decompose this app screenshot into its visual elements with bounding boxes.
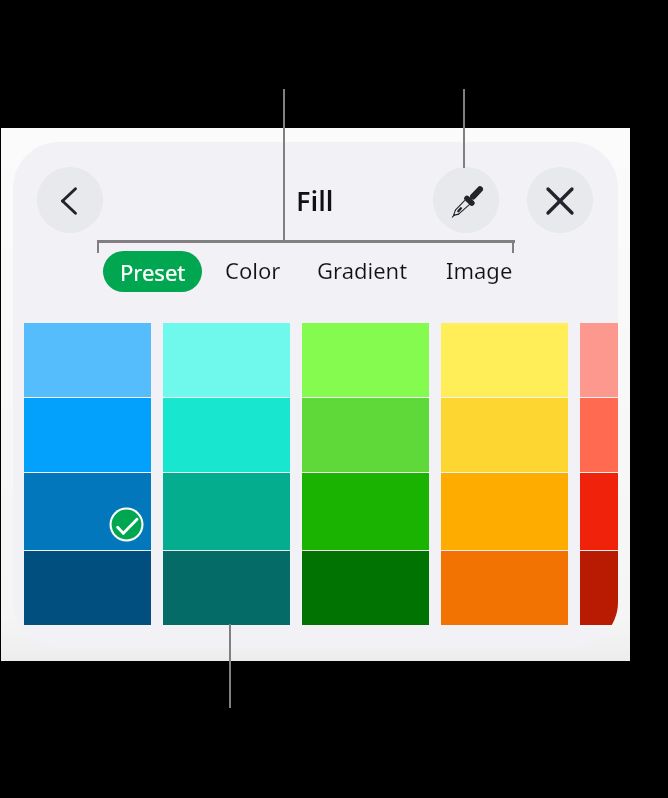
button[interactable]: Preset [103, 251, 202, 292]
staticText: Preset [120, 257, 186, 287]
button[interactable]: Eyedropper [433, 167, 499, 233]
staticText: Gradient [317, 255, 408, 285]
button[interactable] [580, 551, 618, 625]
button[interactable]: Selected colour [109, 507, 144, 542]
button[interactable]: Close [527, 167, 593, 233]
staticText: Image [446, 255, 513, 285]
button[interactable]: Back [37, 167, 103, 233]
button[interactable] [24, 473, 151, 550]
staticText: Color [225, 255, 281, 285]
button[interactable]: Image [439, 249, 519, 290]
staticText: Fill [296, 182, 334, 219]
button[interactable]: Color [213, 249, 293, 290]
button[interactable]: Gradient [302, 249, 422, 290]
